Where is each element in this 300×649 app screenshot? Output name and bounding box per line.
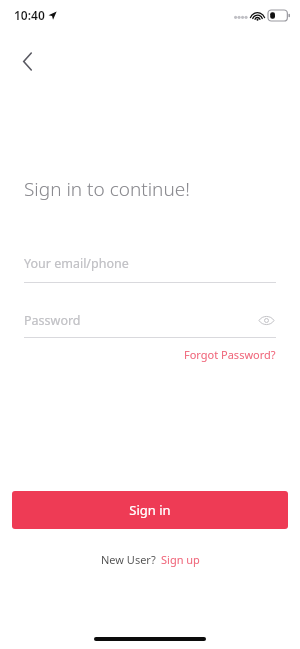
staticText: Password [24, 312, 81, 329]
staticText: Forgot Password? [184, 347, 276, 362]
button[interactable]: Sign up [161, 552, 200, 567]
button[interactable]: Back [6, 40, 48, 82]
staticText: Sign in [129, 501, 171, 519]
button[interactable]: Show password [256, 310, 276, 330]
button[interactable]: Password [24, 310, 276, 338]
staticText: Sign up [161, 552, 200, 567]
staticText: New User? [101, 552, 156, 567]
button[interactable]: Forgot Password? [184, 344, 276, 365]
staticText: Sign in to continue! [24, 176, 190, 202]
button[interactable]: Your email/phone [24, 255, 276, 283]
staticText: Your email/phone [24, 255, 129, 272]
button[interactable]: Sign in [12, 491, 288, 529]
staticText: 10:40 [14, 7, 45, 23]
